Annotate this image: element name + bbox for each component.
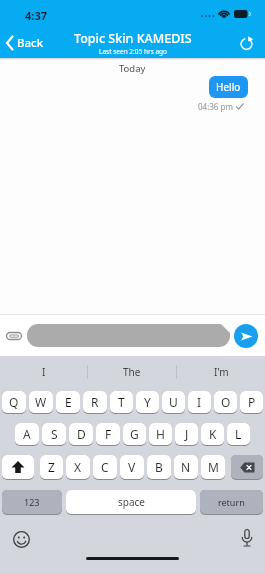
staticText: Topic Skin KAMEDIS xyxy=(74,30,192,47)
button[interactable]: M xyxy=(201,455,225,480)
button[interactable]: Z xyxy=(40,455,63,480)
button[interactable]: Hello xyxy=(209,76,248,98)
button[interactable]: O xyxy=(214,391,237,414)
button[interactable]: Q xyxy=(2,391,26,414)
button[interactable]: D xyxy=(69,423,93,446)
staticText: space xyxy=(118,495,145,509)
button[interactable]: return xyxy=(200,490,263,515)
button[interactable]: S xyxy=(42,423,66,446)
staticText: H xyxy=(156,426,165,442)
staticText: E xyxy=(65,394,72,410)
staticText: A xyxy=(23,426,31,442)
button[interactable]: 123 xyxy=(2,490,62,515)
button[interactable]: J xyxy=(175,423,198,446)
button[interactable]: U xyxy=(162,391,185,414)
button[interactable]: Back xyxy=(6,35,44,51)
button[interactable]: H xyxy=(149,423,172,446)
button[interactable] xyxy=(2,455,34,480)
staticText: Last seen 2:05 hrs ago xyxy=(99,47,168,56)
staticText: G xyxy=(130,426,139,442)
staticText: Y xyxy=(144,394,151,410)
button[interactable]: F xyxy=(96,423,120,446)
button[interactable]: K xyxy=(201,423,224,446)
staticText: Z xyxy=(48,459,55,475)
staticText: X xyxy=(74,459,82,475)
button[interactable]: I'm xyxy=(177,356,265,388)
staticText: 123 xyxy=(24,496,40,508)
staticText: C xyxy=(101,459,109,475)
staticText: Hello xyxy=(216,80,241,94)
staticText: The xyxy=(123,365,141,379)
button[interactable]: R xyxy=(83,391,107,414)
staticText: I xyxy=(197,394,202,410)
button[interactable]: A xyxy=(15,423,39,446)
button[interactable] xyxy=(5,328,23,344)
staticText: O xyxy=(221,394,231,410)
staticText: I xyxy=(42,365,46,379)
button[interactable]: X xyxy=(66,455,90,480)
button[interactable] xyxy=(239,36,254,51)
button[interactable] xyxy=(13,531,30,548)
staticText: N xyxy=(181,459,191,475)
button[interactable]: I xyxy=(188,391,211,414)
button[interactable] xyxy=(241,529,253,548)
button[interactable]: B xyxy=(147,455,171,480)
button[interactable]: W xyxy=(29,391,53,414)
staticText: K xyxy=(209,426,217,442)
staticText: D xyxy=(77,426,86,442)
staticText: U xyxy=(169,394,178,410)
staticText: V xyxy=(128,459,136,475)
button[interactable] xyxy=(231,455,263,480)
staticText: 04:36 pm xyxy=(198,101,233,112)
staticText: Back xyxy=(17,35,44,51)
button[interactable]: space xyxy=(66,490,196,515)
staticText: S xyxy=(51,426,58,442)
button[interactable]: The xyxy=(88,356,176,388)
button[interactable]: G xyxy=(123,423,146,446)
button[interactable]: T xyxy=(110,391,133,414)
button[interactable]: I xyxy=(0,356,87,388)
button[interactable]: P xyxy=(240,391,263,414)
staticText: I'm xyxy=(214,365,229,379)
staticText: R xyxy=(91,394,99,410)
button[interactable]: L xyxy=(227,423,250,446)
staticText: J xyxy=(185,426,189,442)
staticText: M xyxy=(208,459,219,475)
staticText: W xyxy=(35,394,47,410)
staticText: 4:37 xyxy=(25,8,47,23)
button[interactable] xyxy=(234,324,258,348)
button[interactable]: C xyxy=(93,455,117,480)
button[interactable]: E xyxy=(56,391,80,414)
button[interactable]: V xyxy=(120,455,144,480)
button[interactable]: Y xyxy=(136,391,159,414)
staticText: return xyxy=(218,496,245,508)
staticText: Today xyxy=(119,62,146,75)
staticText: L xyxy=(235,426,242,442)
staticText: T xyxy=(118,394,125,410)
staticText: Q xyxy=(9,394,19,410)
staticText: F xyxy=(105,426,112,442)
staticText: B xyxy=(155,459,163,475)
staticText: P xyxy=(248,394,256,410)
button[interactable] xyxy=(27,324,230,347)
button[interactable]: N xyxy=(174,455,198,480)
